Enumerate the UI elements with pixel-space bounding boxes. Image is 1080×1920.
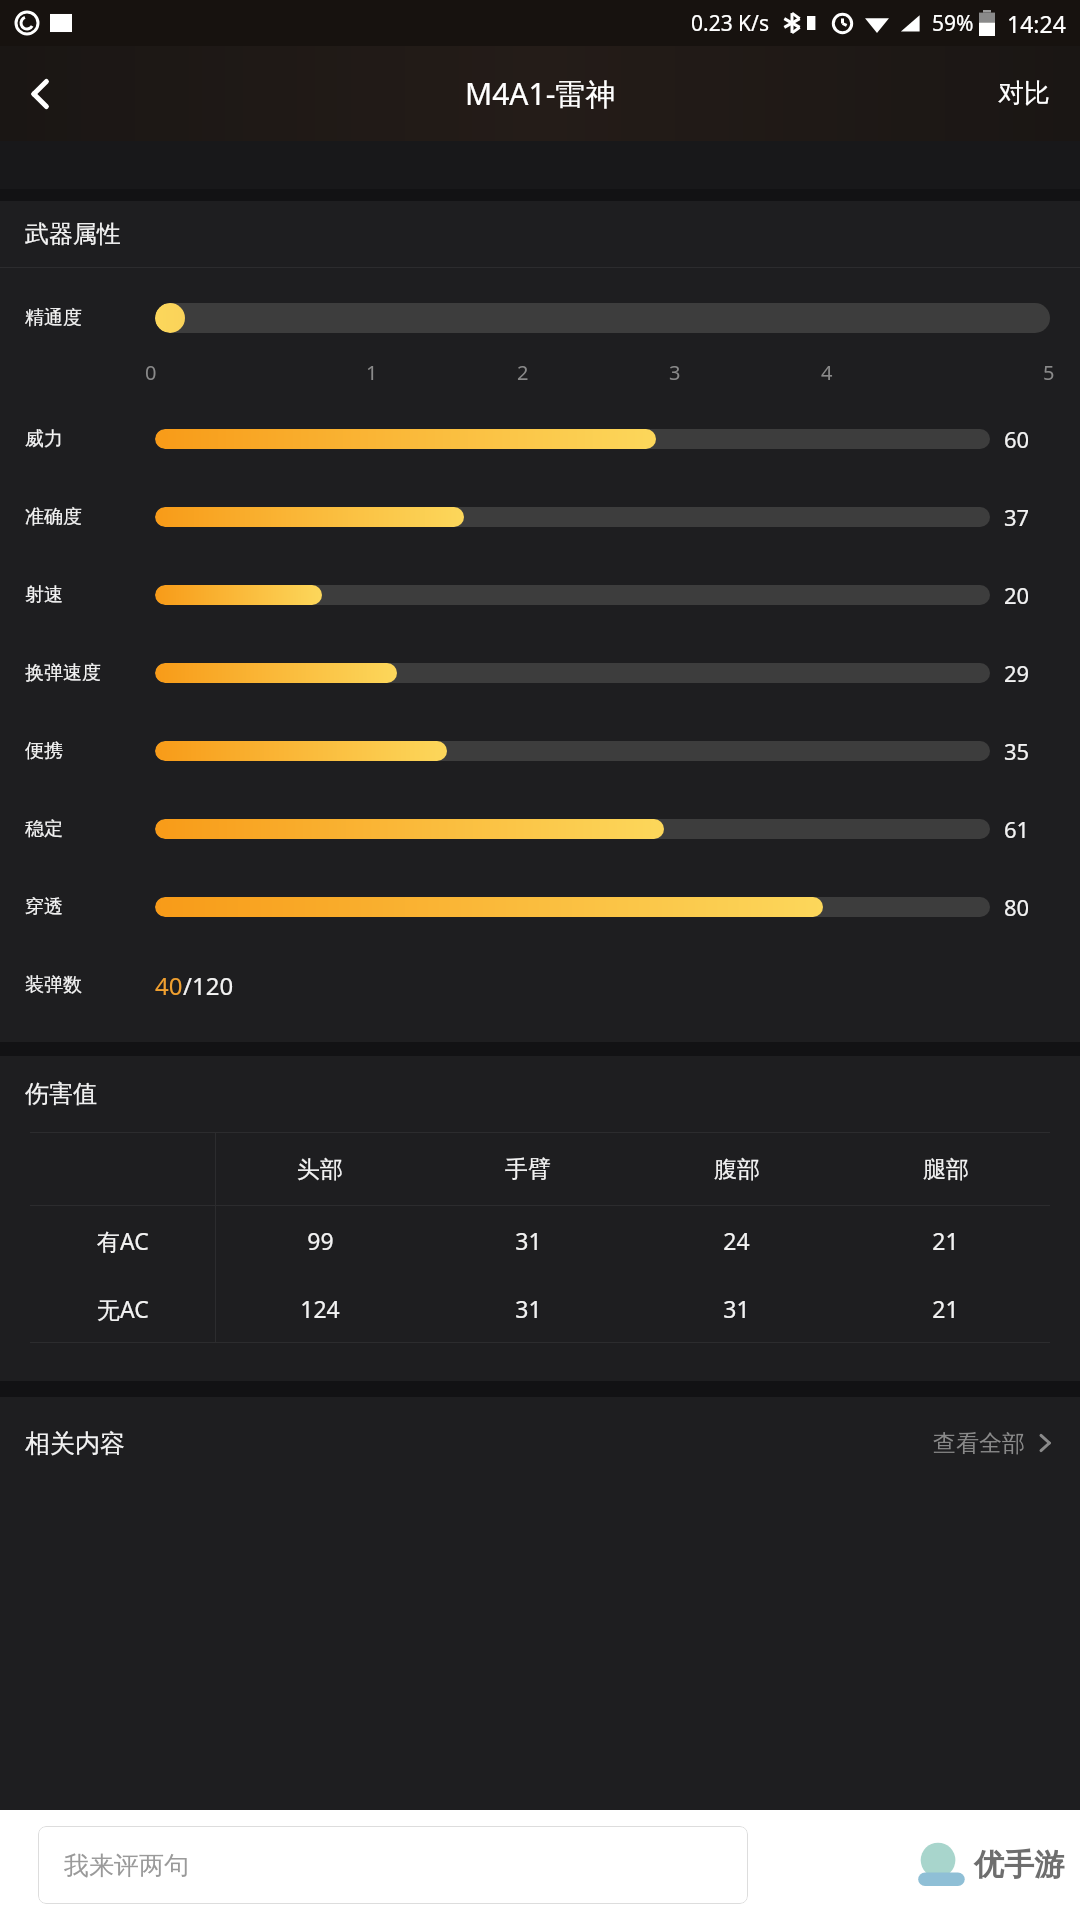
- staticText: 换弹速度: [25, 661, 101, 685]
- staticText: 40: [155, 969, 183, 1002]
- staticText: 2: [517, 359, 529, 386]
- staticText: 14:24: [1007, 8, 1066, 39]
- staticText: 无AC: [97, 1293, 149, 1324]
- staticText: 59%: [932, 9, 974, 38]
- staticText: 60: [1004, 424, 1030, 454]
- staticText: 3: [669, 359, 681, 386]
- staticText: 35: [1004, 736, 1030, 766]
- staticText: 腿部: [923, 1155, 969, 1184]
- staticText: 37: [1004, 502, 1030, 532]
- staticText: 伤害值: [25, 1079, 97, 1109]
- staticText: 穿透: [25, 895, 63, 919]
- staticText: 5: [1043, 359, 1055, 386]
- staticText: 61: [1004, 814, 1030, 844]
- staticText: 装弹数: [25, 973, 82, 997]
- staticText: 我来评两句: [64, 1850, 189, 1881]
- staticText: 相关内容: [25, 1428, 125, 1459]
- staticText: 31: [515, 1225, 542, 1256]
- staticText: 80: [1004, 892, 1030, 922]
- staticText: 0: [145, 359, 157, 386]
- staticText: 手臂: [505, 1155, 551, 1184]
- staticText: 头部: [297, 1155, 343, 1184]
- button[interactable]: 相关内容: [0, 1397, 1080, 1489]
- staticText: 有AC: [97, 1225, 149, 1256]
- staticText: 威力: [25, 427, 63, 451]
- button[interactable]: 对比: [978, 63, 1070, 124]
- staticText: 腹部: [714, 1155, 760, 1184]
- staticText: 21: [932, 1225, 959, 1256]
- staticText: M4A1-雷神: [465, 73, 616, 114]
- staticText: 优手游: [974, 1846, 1064, 1884]
- staticText: 射速: [25, 583, 63, 607]
- button[interactable]: Back: [8, 61, 74, 127]
- staticText: 稳定: [25, 817, 63, 841]
- staticText: 124: [300, 1293, 340, 1324]
- staticText: 31: [723, 1293, 750, 1324]
- staticText: 便携: [25, 739, 63, 763]
- staticText: 精通度: [25, 306, 82, 330]
- staticText: 武器属性: [25, 219, 121, 249]
- staticText: 24: [723, 1225, 750, 1256]
- staticText: 查看全部: [933, 1429, 1025, 1458]
- button[interactable]: 我来评两句: [38, 1826, 748, 1904]
- staticText: 0.23 K/s: [691, 9, 769, 38]
- staticText: 99: [307, 1225, 334, 1256]
- staticText: 31: [515, 1293, 542, 1324]
- staticText: /120: [183, 969, 234, 1002]
- staticText: 20: [1004, 580, 1030, 610]
- staticText: 4: [821, 359, 833, 386]
- staticText: 准确度: [25, 505, 82, 529]
- staticText: 对比: [998, 77, 1050, 110]
- staticText: 29: [1004, 658, 1030, 688]
- staticText: 21: [932, 1293, 959, 1324]
- staticText: 1: [366, 359, 378, 386]
